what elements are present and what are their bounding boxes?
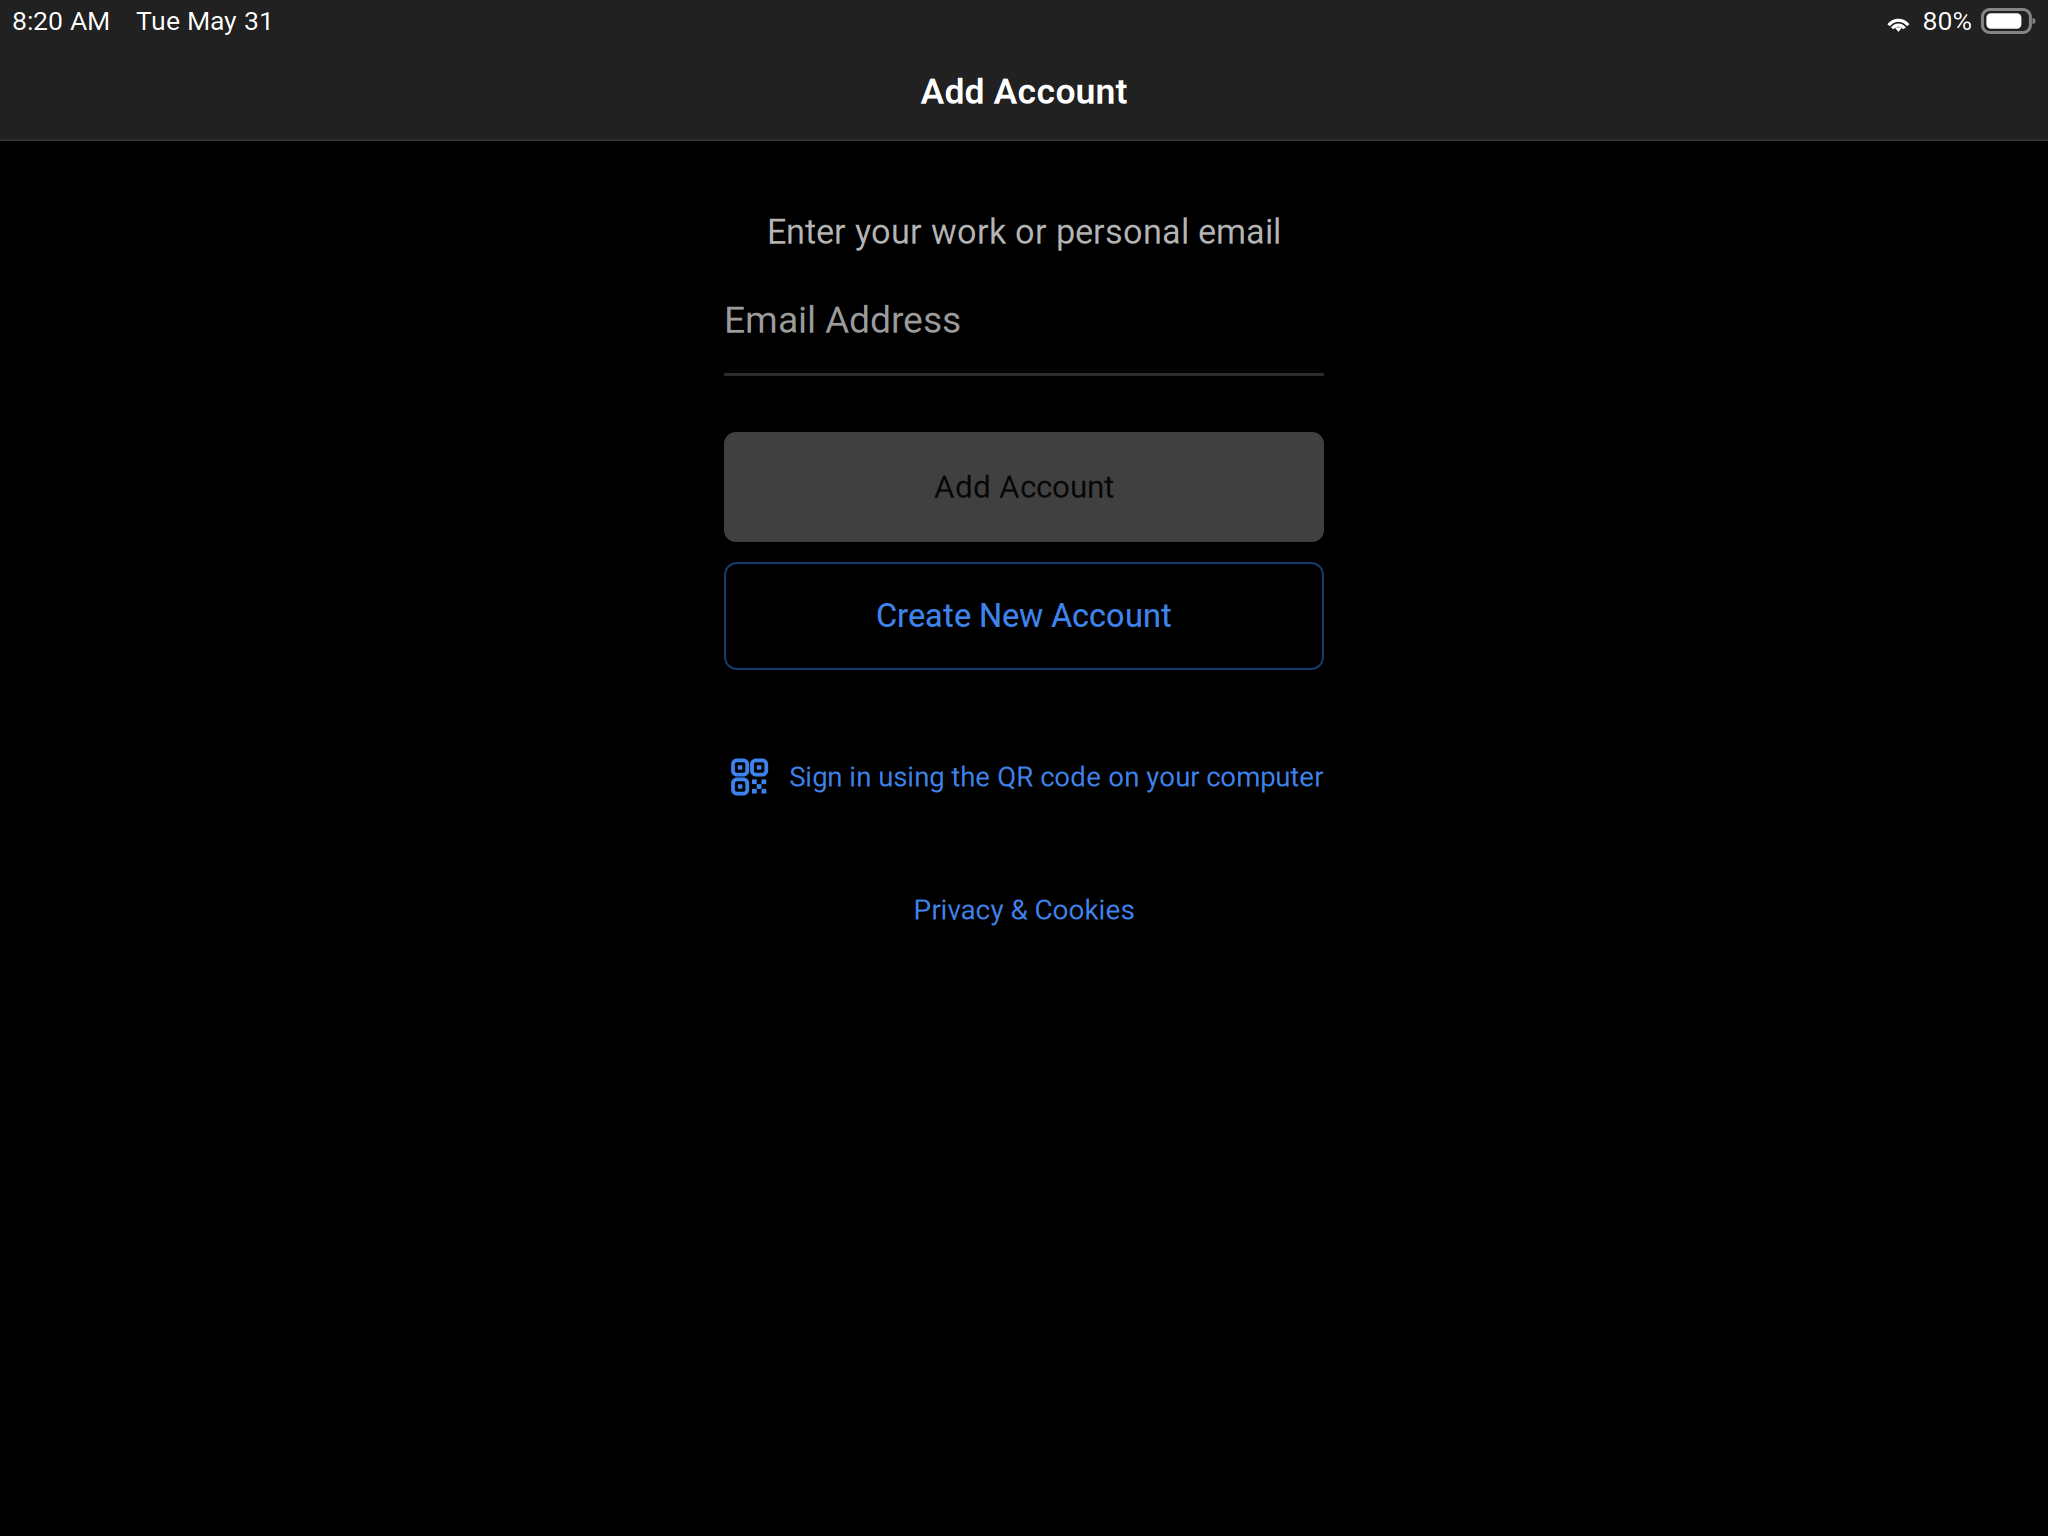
button[interactable]: Privacy & Cookies <box>899 888 1148 932</box>
button[interactable]: Email Address <box>724 300 1324 376</box>
staticText: Privacy & Cookies <box>913 894 1134 926</box>
staticText: Create New Account <box>876 597 1172 635</box>
staticText: Add Account <box>920 71 1127 112</box>
staticText: 80% <box>1922 5 1972 37</box>
staticText: Email Address <box>724 298 961 342</box>
staticText: Add Account <box>934 469 1114 505</box>
button[interactable]: Create New Account <box>724 562 1324 670</box>
staticText: 8:20 AM <box>12 5 110 37</box>
staticText: Enter your work or personal email <box>767 212 1281 252</box>
staticText: Tue May 31 <box>136 5 274 37</box>
button[interactable]: Sign in using the QR code on your comput… <box>724 756 1324 798</box>
button[interactable]: Add Account <box>724 432 1324 542</box>
staticText: Sign in using the QR code on your comput… <box>789 761 1323 793</box>
